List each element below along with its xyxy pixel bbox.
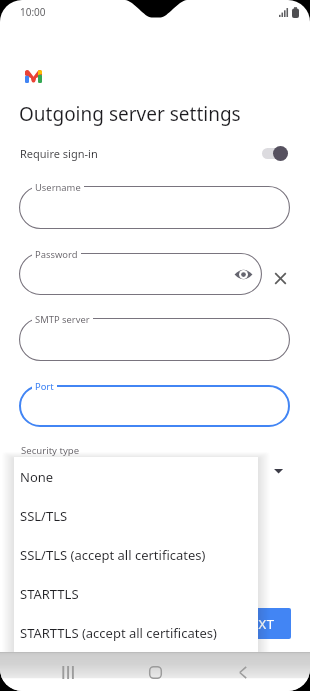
- button[interactable]: Port: [19, 385, 290, 427]
- staticText: Security type: [21, 444, 80, 457]
- button[interactable]: Recents: [62, 666, 76, 679]
- staticText: STARTTLS (accept all certificates): [20, 624, 217, 642]
- button[interactable]: Show password: [234, 265, 253, 284]
- button[interactable]: SMTP server: [19, 318, 290, 361]
- staticText: Username: [35, 181, 81, 194]
- staticText: Port: [35, 380, 54, 393]
- staticText: STARTTLS: [20, 585, 79, 603]
- button[interactable]: STARTTLS: [14, 574, 258, 613]
- button[interactable]: NEXT: [223, 608, 291, 639]
- staticText: None: [20, 468, 54, 486]
- staticText: SSL/TLS (accept all certificates): [20, 546, 206, 564]
- button[interactable]: None: [14, 457, 258, 496]
- button[interactable]: Require sign-in: [262, 146, 288, 161]
- button[interactable]: SSL/TLS (accept all certificates): [14, 535, 258, 574]
- button[interactable]: Back: [239, 666, 247, 679]
- staticText: SSL/TLS: [20, 507, 68, 525]
- button[interactable]: STARTTLS (accept all certificates): [14, 613, 258, 652]
- button[interactable]: Clear password: [271, 269, 290, 288]
- staticText: 10:00: [20, 5, 46, 19]
- button[interactable]: Home: [149, 666, 162, 679]
- button[interactable]: Password: [19, 253, 262, 295]
- staticText: Outgoing server settings: [19, 101, 241, 127]
- staticText: Require sign-in: [20, 146, 98, 161]
- staticText: NEXT: [240, 615, 275, 633]
- button[interactable]: Username: [19, 186, 290, 229]
- button[interactable]: Require sign-in: [0, 139, 310, 167]
- button[interactable]: SSL/TLS: [14, 496, 258, 535]
- staticText: Password: [35, 248, 78, 261]
- button[interactable]: Expand security type: [269, 462, 287, 480]
- staticText: SMTP server: [35, 313, 90, 326]
